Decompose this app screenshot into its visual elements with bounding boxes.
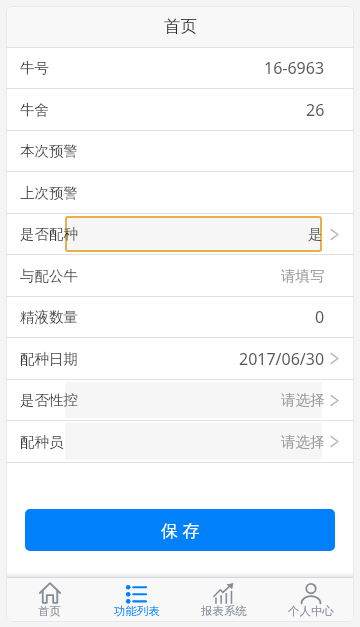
staticText: 功能列表 [114, 604, 160, 618]
staticText: 个人中心 [288, 604, 334, 618]
button[interactable]: 是否配种 [6, 214, 354, 254]
staticText: 上次预警 [20, 184, 78, 202]
staticText: 是否配种 [20, 225, 78, 243]
button[interactable]: Profile [267, 578, 354, 622]
button[interactable]: Home [6, 578, 93, 622]
staticText: 16-6963 [264, 57, 325, 79]
staticText: 牛号 [20, 59, 49, 77]
staticText: 首页 [164, 16, 197, 37]
button[interactable]: 本次预警 [6, 131, 354, 171]
staticText: 本次预警 [20, 142, 78, 160]
staticText: 与配公牛 [20, 267, 78, 285]
button[interactable]: 是否性控 [6, 380, 354, 420]
button[interactable]: 配种日期 [6, 338, 354, 379]
button[interactable]: Function list [93, 578, 180, 622]
staticText: 配种日期 [20, 350, 78, 368]
staticText: 牛舍 [20, 101, 49, 119]
button[interactable]: 与配公牛 [6, 255, 354, 296]
staticText: 0 [315, 306, 325, 328]
staticText: 保 存 [161, 519, 200, 542]
staticText: 报表系统 [201, 604, 247, 618]
staticText: 配种员 [20, 433, 64, 451]
button[interactable]: 精液数量 [6, 297, 354, 337]
staticText: 请填写 [281, 267, 325, 285]
staticText: 首页 [38, 604, 61, 618]
staticText: 是 [308, 225, 323, 243]
button[interactable]: 配种员 [6, 421, 354, 462]
button[interactable]: 牛舍 [6, 89, 354, 130]
button[interactable]: 上次预警 [6, 172, 354, 213]
staticText: 请选择 [281, 391, 325, 409]
staticText: 请选择 [281, 433, 325, 451]
staticText: 2017/06/30 [239, 348, 325, 370]
staticText: 26 [306, 99, 325, 121]
staticText: 是否性控 [20, 391, 78, 409]
button[interactable]: 保 存 [25, 509, 335, 551]
button[interactable]: Report system [180, 578, 267, 622]
button[interactable]: 牛号 [6, 48, 354, 88]
staticText: 精液数量 [20, 308, 78, 326]
